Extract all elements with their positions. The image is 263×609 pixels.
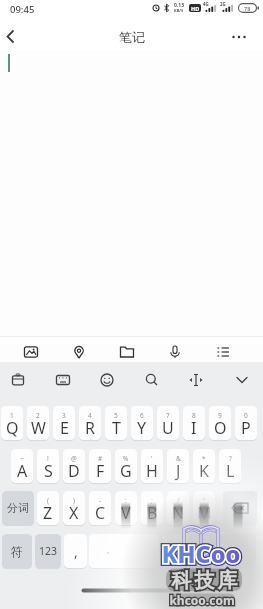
staticText: B	[147, 502, 158, 524]
button[interactable]	[182, 364, 210, 394]
button[interactable]	[93, 364, 121, 394]
button[interactable]: 5	[105, 406, 127, 440]
staticText: H	[146, 460, 158, 482]
button[interactable]	[138, 364, 166, 394]
button[interactable]: 2	[27, 406, 49, 440]
staticText: *	[202, 454, 206, 463]
button[interactable]: 6	[131, 406, 153, 440]
staticText: 2	[36, 411, 40, 420]
staticText: 符	[11, 544, 23, 559]
button[interactable]: 0	[235, 406, 257, 440]
staticText: @	[71, 454, 77, 463]
staticText: ~	[20, 454, 24, 463]
button[interactable]: ?	[219, 449, 241, 483]
button[interactable]: 分词	[2, 491, 34, 525]
staticText: -	[99, 496, 102, 505]
button[interactable]	[188, 534, 256, 568]
button[interactable]	[223, 491, 257, 525]
staticText: 123	[39, 544, 58, 558]
staticText: O	[214, 417, 227, 439]
button[interactable]: 4	[79, 406, 101, 440]
button[interactable]: #	[89, 449, 111, 483]
staticText: "	[203, 496, 206, 505]
staticText: ,	[74, 542, 78, 561]
button[interactable]	[49, 364, 77, 394]
button[interactable]: 符	[2, 534, 32, 568]
button[interactable]	[228, 364, 256, 394]
button[interactable]	[0, 22, 26, 50]
button[interactable]: 3	[53, 406, 75, 440]
staticText: &	[176, 454, 181, 463]
button[interactable]: 7	[157, 406, 179, 440]
staticText: 2G	[220, 1, 226, 7]
staticText: L	[226, 460, 235, 482]
staticText: 分词	[7, 501, 29, 515]
staticText: ?	[229, 454, 232, 463]
staticText: I	[191, 417, 197, 439]
button[interactable]: %	[115, 449, 137, 483]
staticText: )	[73, 496, 75, 505]
staticText: G	[120, 460, 132, 482]
staticText: J	[176, 460, 181, 482]
button[interactable]: 9	[209, 406, 231, 440]
staticText: !	[47, 454, 49, 463]
staticText: 8	[192, 411, 196, 420]
staticText: %	[123, 454, 129, 463]
staticText: E	[60, 417, 69, 439]
button[interactable]	[4, 364, 32, 394]
button[interactable]: 8	[183, 406, 205, 440]
staticText: K	[199, 460, 209, 482]
button[interactable]: !	[37, 449, 59, 483]
button[interactable]	[18, 338, 44, 362]
button[interactable]: "	[193, 491, 215, 525]
staticText: KHCoo	[131, 538, 263, 570]
staticText: KB/S	[174, 8, 184, 13]
button[interactable]: *	[193, 449, 215, 483]
staticText: N	[172, 502, 185, 524]
button[interactable]	[227, 25, 251, 49]
button[interactable]: /	[167, 491, 189, 525]
button[interactable]: :	[115, 491, 137, 525]
button[interactable]: 1	[1, 406, 23, 440]
staticText: #	[98, 454, 103, 463]
staticText: U	[162, 417, 174, 439]
staticText: 科技库	[141, 568, 263, 593]
staticText: 9	[218, 411, 222, 420]
staticText: 5	[114, 411, 118, 420]
staticText: KHCoo	[131, 538, 263, 570]
button[interactable]: ~	[11, 449, 33, 483]
staticText: 、	[106, 544, 115, 555]
staticText: C	[95, 502, 106, 524]
staticText: 4G	[203, 1, 209, 7]
staticText: P	[241, 417, 251, 439]
staticText: khcoo.com	[137, 592, 263, 608]
staticText: Y	[137, 417, 147, 439]
staticText: 笔记	[119, 29, 145, 45]
button[interactable]: @	[63, 449, 85, 483]
staticText: M	[197, 502, 212, 524]
button[interactable]: ,	[64, 534, 87, 568]
button[interactable]: '	[141, 449, 163, 483]
staticText: 09:45	[10, 3, 35, 16]
staticText: 78	[244, 5, 251, 12]
staticText: 6	[140, 411, 144, 420]
button[interactable]: &	[167, 449, 189, 483]
button[interactable]	[162, 338, 188, 362]
button[interactable]	[0, 50, 263, 336]
button[interactable]: -	[89, 491, 111, 525]
button[interactable]	[210, 338, 236, 362]
staticText: W	[31, 417, 46, 439]
staticText: A	[17, 460, 28, 482]
button[interactable]: ;	[141, 491, 163, 525]
button[interactable]	[89, 534, 159, 568]
staticText: 0.13	[174, 2, 184, 9]
button[interactable]: 123	[35, 534, 61, 568]
staticText: D	[68, 460, 80, 482]
staticText: 科技库	[141, 568, 263, 593]
staticText: (	[47, 496, 49, 505]
button[interactable]	[114, 338, 140, 362]
button[interactable]: (	[37, 491, 59, 525]
button[interactable]: 。	[162, 534, 185, 568]
button[interactable]: )	[63, 491, 85, 525]
button[interactable]	[66, 338, 92, 362]
